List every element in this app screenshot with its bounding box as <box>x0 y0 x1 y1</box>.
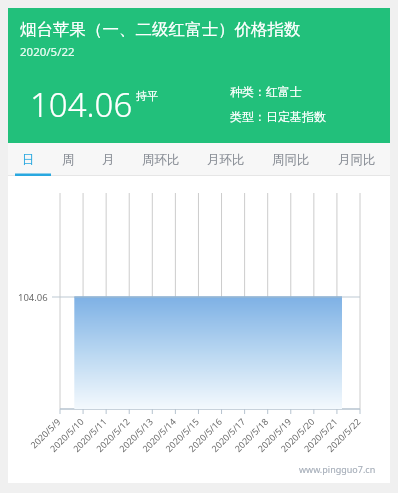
staticText: 周环比 <box>142 152 180 168</box>
button[interactable]: 周 <box>48 143 88 176</box>
staticText: 月 <box>102 152 115 168</box>
button[interactable]: 月 <box>88 143 128 176</box>
staticText: 烟台苹果（一、二级红富士）价格指数 <box>20 19 301 40</box>
staticText: 种类：红富士 <box>230 84 302 99</box>
button[interactable]: 月同比 <box>323 143 390 176</box>
staticText: 月环比 <box>207 152 245 168</box>
staticText: 104.06 <box>30 82 133 127</box>
staticText: 2020/5/22 <box>20 44 75 60</box>
button[interactable]: 周同比 <box>258 143 323 176</box>
button[interactable]: 日 <box>8 143 48 176</box>
staticText: 日 <box>22 152 35 168</box>
staticText: 周同比 <box>272 152 310 168</box>
staticText: 月同比 <box>338 152 376 168</box>
button[interactable]: 月环比 <box>193 143 258 176</box>
staticText: 周 <box>62 152 75 168</box>
staticText: 持平 <box>136 89 158 103</box>
button[interactable]: 周环比 <box>128 143 193 176</box>
staticText: 类型：日定基指数 <box>230 109 326 124</box>
